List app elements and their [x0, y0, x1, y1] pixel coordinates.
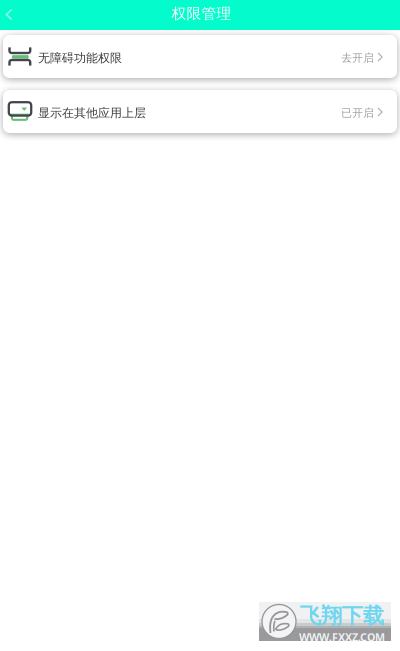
button[interactable]: 无障碍功能权限 — [3, 35, 397, 78]
staticText: 权限管理 — [171, 4, 231, 22]
button[interactable]: Back — [0, 1, 27, 29]
staticText: 显示在其他应用上层 — [38, 106, 146, 120]
staticText: WWW.FXXZ.COM — [299, 630, 385, 644]
staticText: 去开启 — [341, 51, 374, 64]
button[interactable]: 显示在其他应用上层 — [3, 90, 397, 133]
staticText: 飞翔下载 — [300, 603, 384, 629]
staticText: 已开启 — [341, 106, 374, 119]
staticText: 无障碍功能权限 — [38, 51, 122, 65]
